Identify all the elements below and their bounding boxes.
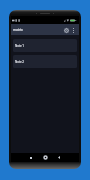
button[interactable]: More options bbox=[71, 25, 76, 35]
staticText: matrix bbox=[13, 28, 23, 32]
button[interactable]: Back bbox=[52, 153, 66, 162]
button[interactable]: Note 1 bbox=[13, 39, 77, 52]
staticText: Note 1 bbox=[15, 44, 25, 48]
button[interactable]: Note 2 bbox=[13, 55, 77, 68]
button[interactable]: Settings bbox=[62, 25, 71, 35]
button[interactable]: Home bbox=[38, 153, 52, 162]
staticText: Note 2 bbox=[15, 60, 25, 64]
button[interactable]: Recents bbox=[24, 153, 38, 162]
